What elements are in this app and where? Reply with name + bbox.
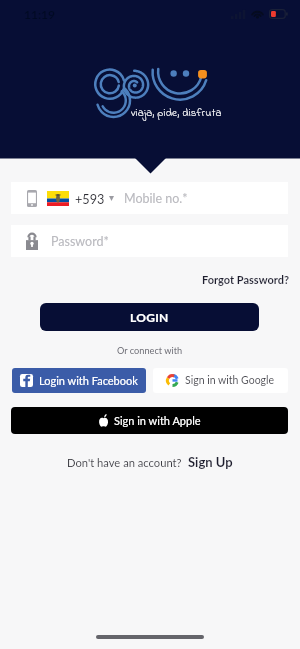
button[interactable]: Login with Facebook bbox=[12, 368, 146, 393]
staticText: +593 bbox=[75, 191, 105, 206]
staticText: Sign in with Google bbox=[185, 374, 275, 387]
staticText: LOGIN bbox=[130, 310, 169, 324]
staticText: Password* bbox=[51, 234, 109, 249]
staticText: Forgot Password? bbox=[202, 273, 289, 286]
staticText: Mobile no.* bbox=[124, 191, 188, 206]
button[interactable]: Sign in with Apple bbox=[11, 407, 288, 434]
button[interactable]: LOGIN bbox=[40, 303, 259, 331]
staticText: Login with Facebook bbox=[39, 374, 138, 387]
button[interactable]: Sign in with Google bbox=[153, 368, 288, 393]
staticText: Don't have an account? bbox=[67, 456, 182, 469]
button[interactable]: Sign Up bbox=[188, 454, 233, 470]
staticText: Sign Up bbox=[188, 454, 233, 470]
staticText: viaja, pide, disfruta bbox=[131, 105, 222, 121]
staticText: Sign in with Apple bbox=[114, 414, 201, 427]
staticText: Or connect with bbox=[117, 345, 183, 356]
button[interactable]: Password* bbox=[11, 225, 288, 257]
button[interactable]: Forgot Password? bbox=[0, 268, 300, 290]
button[interactable]: +593 bbox=[11, 182, 288, 214]
staticText: 11:19 bbox=[24, 7, 55, 21]
